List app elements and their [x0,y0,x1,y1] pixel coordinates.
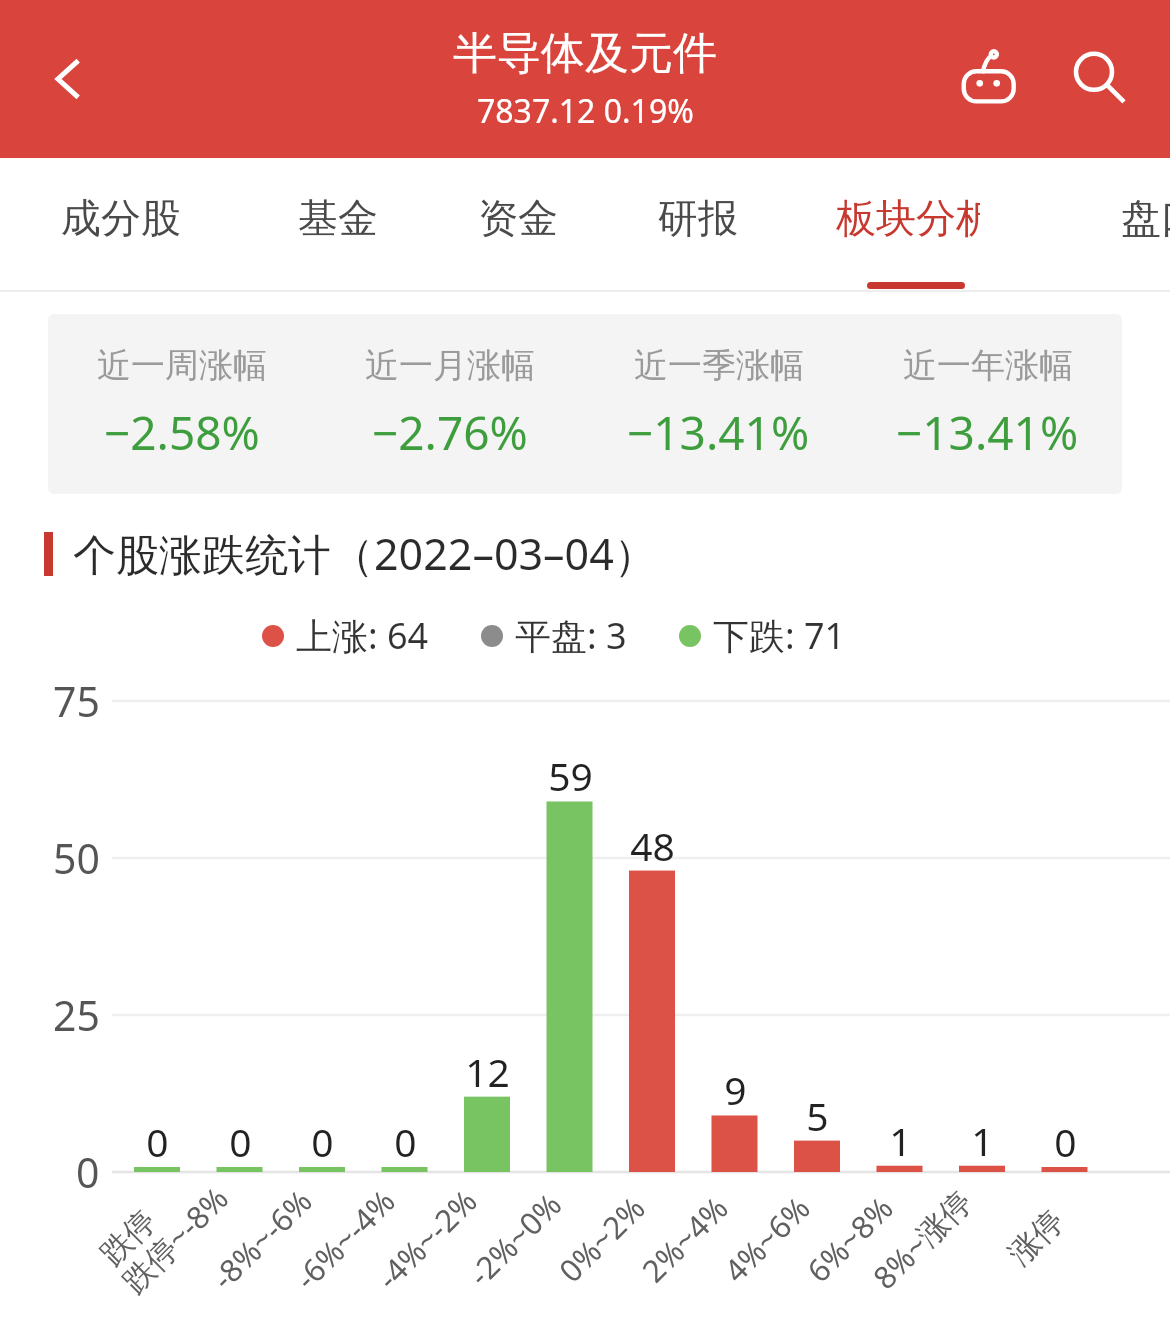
staticText: -2%~0% [459,1183,570,1294]
staticText: 近一季涨幅 [634,344,804,387]
staticText: 50 [53,830,100,886]
staticText: 7837.12 0.19% [477,89,694,133]
staticText: 6%~8% [797,1187,901,1291]
staticText: 0 [146,1115,169,1168]
staticText: 下跌: 71 [713,611,846,660]
button[interactable]: 资金 [462,166,574,270]
staticText: 0 [311,1115,334,1168]
staticText: 成分股 [61,193,181,243]
staticText: 0 [394,1115,417,1168]
staticText: 12 [465,1045,510,1098]
staticText: 近一月涨幅 [365,344,535,387]
staticText: 0 [76,1144,100,1200]
staticText: 近一年涨幅 [903,344,1073,387]
staticText: 0%~2% [549,1187,653,1291]
button[interactable]: 盘口 [1106,166,1170,270]
staticText: 4%~6% [714,1187,818,1291]
staticText: 半导体及元件 [453,26,717,81]
staticText: 5 [806,1089,829,1142]
staticText: -6%~-4% [285,1180,404,1298]
staticText: −2.76% [372,401,528,464]
button[interactable]: 下跌: 71 [679,611,846,660]
button[interactable]: 成分股 [48,166,194,270]
staticText: 9 [724,1063,747,1116]
staticText: 个股涨跌统计（2022–03–04） [73,524,657,583]
staticText: 平盘: 3 [515,611,627,660]
button[interactable]: Assistant robot [944,33,1036,125]
staticText: −13.41% [627,401,810,464]
staticText: 近一周涨幅 [97,344,267,387]
staticText: 48 [630,819,675,872]
staticText: 1 [889,1114,912,1167]
staticText: 资金 [478,193,558,243]
button[interactable]: Back [26,36,112,122]
staticText: 涨停 [1000,1202,1072,1273]
staticText: −13.41% [896,401,1079,464]
button[interactable]: 研报 [642,166,754,270]
button[interactable]: 基金 [282,166,394,270]
staticText: 0 [229,1115,252,1168]
button[interactable]: Search [1054,33,1146,125]
staticText: -4%~-2% [367,1180,486,1298]
staticText: 跌停~-8% [113,1177,237,1301]
staticText: 跌停 [92,1202,164,1273]
staticText: 板块分析 [836,193,980,243]
staticText: 75 [53,673,100,729]
staticText: 基金 [298,193,378,243]
button[interactable]: 上涨: 64 [262,611,429,660]
button[interactable]: 板块分析 [836,166,980,270]
staticText: 上涨: 64 [296,611,429,660]
staticText: 25 [53,987,100,1043]
staticText: 0 [1054,1115,1077,1168]
staticText: 1 [971,1114,994,1167]
staticText: 8%~涨停 [863,1180,981,1298]
staticText: 2%~4% [632,1187,736,1291]
staticText: 盘口 [1121,193,1170,243]
staticText: 59 [548,749,593,802]
staticText: −2.58% [104,401,260,464]
staticText: -8%~-6% [202,1180,321,1298]
staticText: 研报 [658,193,738,243]
button[interactable]: 平盘: 3 [481,611,627,660]
